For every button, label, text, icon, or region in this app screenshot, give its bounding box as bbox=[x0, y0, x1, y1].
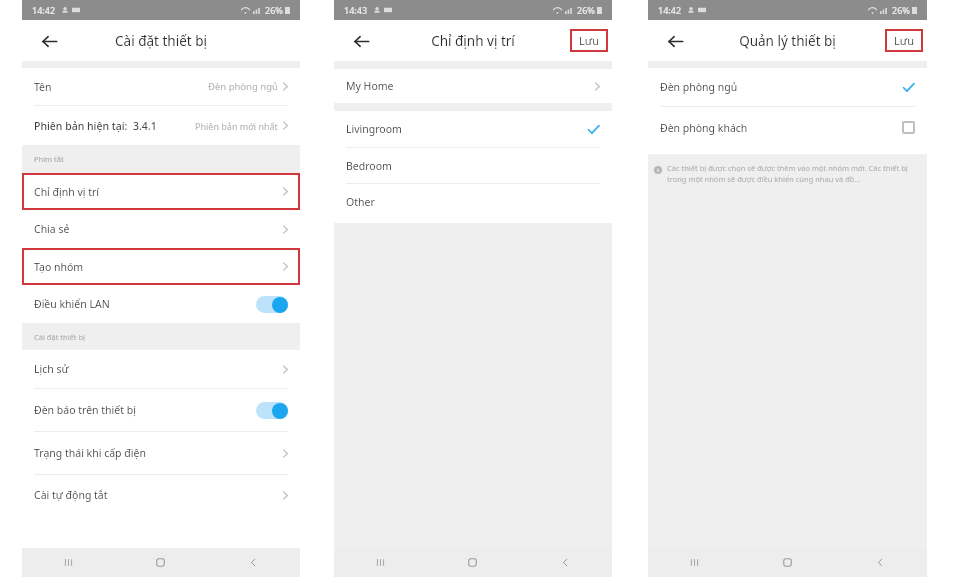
button[interactable]: Back bbox=[32, 24, 66, 58]
button[interactable]: Recents bbox=[648, 548, 741, 577]
staticText: Lưu bbox=[579, 33, 599, 48]
button[interactable]: Đèn phòng ngủ bbox=[648, 68, 927, 106]
staticText: Các thiết bị được chọn sẽ được thêm vào … bbox=[667, 163, 913, 184]
staticText: 14:42 bbox=[658, 4, 682, 16]
button[interactable]: Livingroom bbox=[334, 111, 612, 147]
staticText: 26% bbox=[265, 4, 283, 16]
staticText: 14:43 bbox=[344, 4, 368, 16]
button[interactable]: Bedroom bbox=[334, 148, 612, 183]
button[interactable]: Recents bbox=[334, 548, 426, 577]
staticText: Tạo nhóm bbox=[34, 260, 84, 274]
button[interactable]: Đèn báo trên thiết bị bbox=[22, 389, 300, 431]
staticText: Phím tắt bbox=[34, 154, 64, 164]
staticText: Đèn phòng khách bbox=[660, 121, 748, 135]
staticText: Quản lý thiết bị bbox=[739, 32, 836, 50]
staticText: 14:42 bbox=[32, 4, 56, 16]
button[interactable]: Chia sẻ bbox=[22, 210, 300, 248]
button[interactable]: Tạo nhóm bbox=[22, 248, 300, 285]
staticText: Trạng thái khi cấp điện bbox=[34, 446, 146, 460]
button[interactable]: Toggle bbox=[256, 296, 288, 313]
staticText: Chia sẻ bbox=[34, 222, 70, 236]
staticText: Lịch sử bbox=[34, 362, 69, 376]
button[interactable]: Lưu bbox=[885, 29, 923, 52]
button[interactable]: Back bbox=[519, 548, 612, 577]
button[interactable]: Trạng thái khi cấp điện bbox=[22, 432, 300, 474]
staticText: Cài tự động tắt bbox=[34, 488, 108, 502]
staticText: Cài đặt thiết bị bbox=[34, 332, 86, 342]
button[interactable]: Home bbox=[114, 548, 207, 577]
staticText: Đèn phòng ngủ bbox=[660, 80, 738, 94]
button[interactable]: Other bbox=[334, 184, 612, 219]
button[interactable]: Toggle bbox=[256, 402, 288, 419]
button[interactable]: Lưu bbox=[570, 29, 608, 52]
button[interactable]: Chỉ định vị trí bbox=[22, 173, 300, 210]
staticText: Đèn báo trên thiết bị bbox=[34, 403, 136, 417]
button[interactable]: Đèn phòng khách bbox=[648, 107, 927, 148]
button[interactable]: Back bbox=[658, 24, 692, 58]
staticText: My Home bbox=[346, 79, 394, 93]
button[interactable]: Recents bbox=[22, 548, 114, 577]
staticText: Livingroom bbox=[346, 122, 402, 136]
staticText: Đèn phòng ngủ bbox=[208, 80, 278, 93]
staticText: Chỉ định vị trí bbox=[431, 32, 515, 50]
button[interactable]: Phiên bản hiện tại: 3.4.1 bbox=[22, 106, 300, 145]
staticText: Phiên bản mới nhất bbox=[195, 120, 278, 132]
staticText: 26% bbox=[892, 4, 910, 16]
button[interactable]: Điều khiển LAN bbox=[22, 285, 300, 323]
staticText: Lưu bbox=[894, 33, 914, 48]
button[interactable]: Back bbox=[207, 548, 300, 577]
button[interactable]: Cài tự động tắt bbox=[22, 475, 300, 515]
staticText: Other bbox=[346, 195, 375, 209]
button[interactable]: Tên bbox=[22, 68, 300, 105]
button[interactable]: Lịch sử bbox=[22, 350, 300, 388]
staticText: 26% bbox=[577, 4, 595, 16]
staticText: Phiên bản hiện tại: 3.4.1 bbox=[34, 119, 157, 133]
button[interactable]: Home bbox=[741, 548, 834, 577]
button[interactable]: Home bbox=[426, 548, 519, 577]
staticText: Chỉ định vị trí bbox=[34, 185, 100, 199]
staticText: Bedroom bbox=[346, 159, 392, 173]
button[interactable]: Back bbox=[834, 548, 927, 577]
button[interactable]: My Home bbox=[334, 69, 612, 103]
staticText: Tên bbox=[34, 80, 52, 94]
staticText: Điều khiển LAN bbox=[34, 297, 110, 311]
staticText: Cài đặt thiết bị bbox=[115, 32, 207, 50]
button[interactable]: Back bbox=[344, 24, 378, 58]
